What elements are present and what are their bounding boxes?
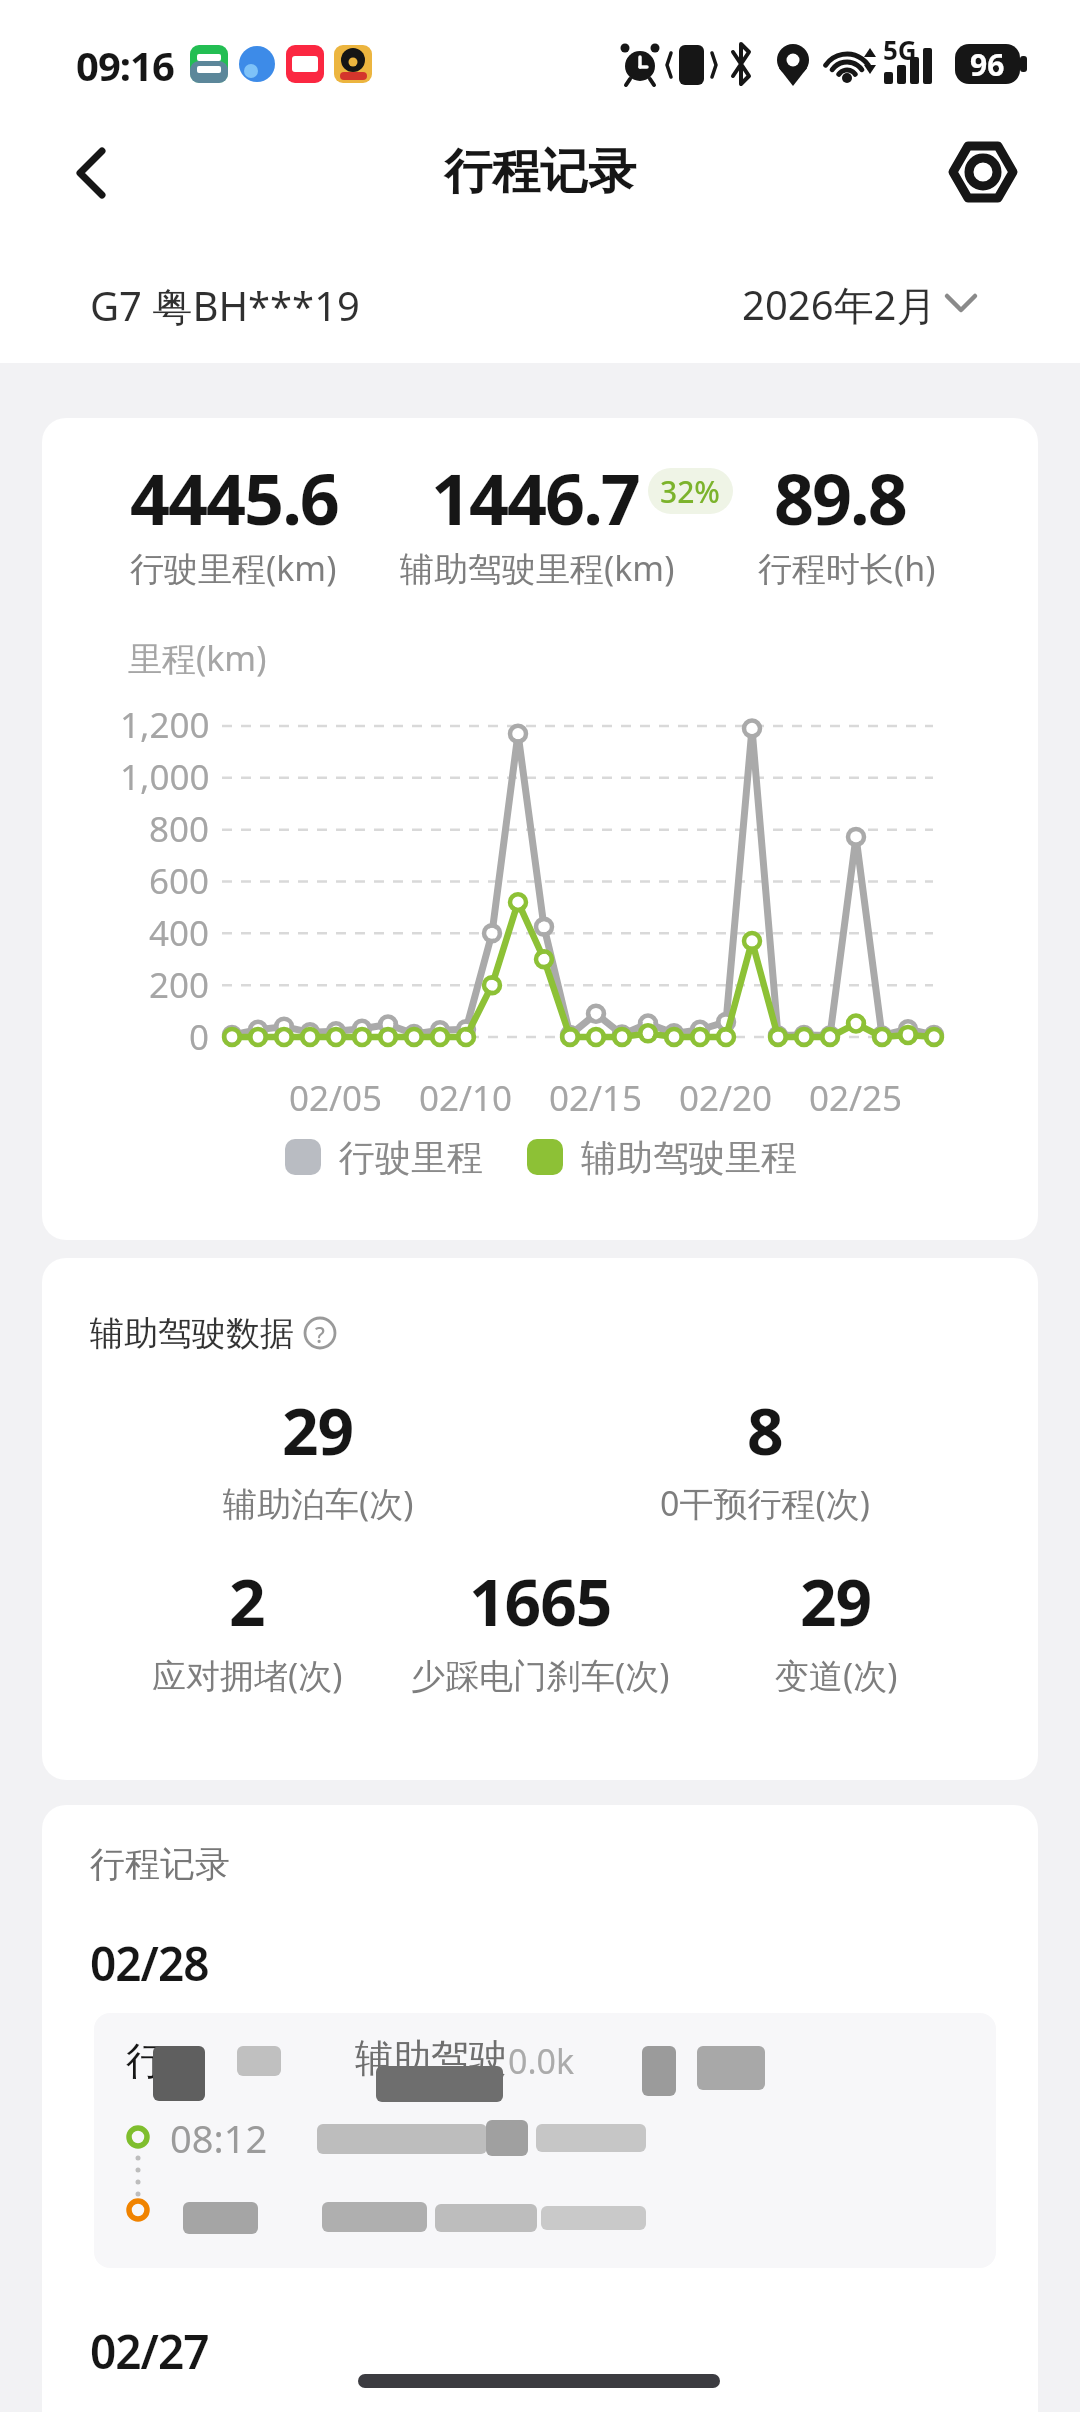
staticText: 5G — [883, 32, 917, 67]
button[interactable] — [940, 130, 1030, 218]
staticText: 02/25 — [809, 1074, 903, 1122]
staticText: 少踩电门刹车(次) — [411, 1652, 670, 1698]
staticText: 09:16 — [76, 38, 174, 90]
staticText: 2026年2月 — [742, 277, 937, 332]
staticText: 02/28 — [90, 1932, 209, 1984]
staticText: 行程记录 — [90, 1842, 230, 1886]
staticText: 辅助驾驶里程(km) — [400, 545, 675, 591]
staticText: 02/10 — [419, 1074, 513, 1122]
staticText: 0干预行程(次) — [660, 1480, 870, 1526]
staticText: 1,000 — [120, 753, 210, 801]
staticText: 应对拥堵(次) — [152, 1652, 343, 1698]
staticText: 600 — [149, 857, 210, 905]
staticText: 02/15 — [549, 1074, 643, 1122]
staticText: 1,200 — [120, 701, 210, 749]
button[interactable] — [55, 135, 135, 215]
staticText: 辅助驾驶 — [355, 2034, 507, 2080]
staticText: 400 — [149, 909, 210, 957]
staticText: 行驶里程 — [339, 1135, 483, 1180]
staticText: 行驶里程(km) — [130, 545, 337, 591]
staticText: 行 — [126, 2037, 164, 2085]
staticText: 200 — [149, 961, 210, 1009]
staticText: 0.0k — [508, 2038, 575, 2080]
staticText: 2 — [229, 1558, 265, 1645]
button[interactable] — [296, 1311, 340, 1355]
staticText: 0 — [189, 1013, 210, 1061]
staticText: 1446.7 — [431, 450, 639, 545]
staticText: ? — [315, 1319, 325, 1349]
staticText: 行程记录 — [444, 142, 636, 202]
staticText: 32% — [660, 471, 720, 512]
staticText: 里程(km) — [128, 635, 267, 681]
staticText: 8 — [747, 1387, 783, 1474]
staticText: 变道(次) — [775, 1652, 898, 1698]
button[interactable] — [94, 2013, 996, 2268]
staticText: 1665 — [469, 1558, 612, 1645]
staticText: 辅助泊车(次) — [223, 1480, 414, 1526]
staticText: G7 粤BH***19 — [90, 278, 360, 330]
staticText: 02/20 — [679, 1074, 773, 1122]
staticText: 08:12 — [170, 2112, 268, 2162]
staticText: 29 — [282, 1387, 354, 1474]
staticText: 4445.6 — [130, 450, 338, 545]
staticText: 89.8 — [774, 450, 906, 545]
staticText: 02/05 — [289, 1074, 383, 1122]
staticText: 800 — [149, 805, 210, 853]
staticText: 辅助驾驶数据 — [90, 1312, 294, 1355]
button[interactable]: 2026年2月 — [600, 272, 937, 336]
staticText: 02/27 — [90, 2320, 209, 2372]
staticText: 29 — [800, 1558, 872, 1645]
staticText: 行程时长(h) — [758, 545, 936, 591]
staticText: 辅助驾驶里程 — [581, 1135, 797, 1180]
staticText: 96 — [970, 44, 1005, 85]
